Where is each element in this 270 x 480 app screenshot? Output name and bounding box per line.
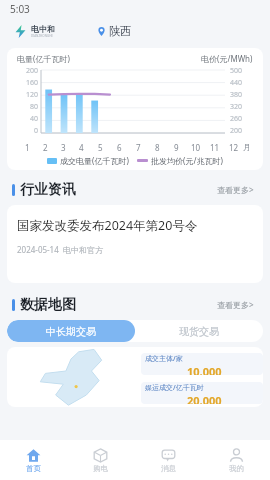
staticText: 440	[230, 78, 243, 88]
staticText: 10	[191, 142, 201, 153]
staticText: 260	[230, 114, 243, 124]
staticText: 2	[43, 142, 48, 153]
staticText: 电中和	[31, 24, 55, 34]
staticText: 20,000	[187, 393, 222, 404]
staticText: 数据地图	[20, 296, 76, 314]
staticText: 1	[25, 142, 30, 153]
staticText: 电价(元/MWh)	[201, 53, 253, 64]
staticText: 消息	[161, 464, 176, 473]
staticText: 7	[136, 142, 141, 153]
staticText: 12	[229, 142, 239, 153]
staticText: 160	[26, 78, 39, 88]
button[interactable]: 查看更多>	[213, 295, 258, 314]
staticText: 380	[230, 90, 243, 100]
button[interactable]: 现货交易	[135, 320, 263, 342]
staticText: 40	[30, 114, 39, 124]
staticText: DIANZHONGHE	[31, 34, 54, 38]
staticText: 国家发改委发布2024年第20号令	[17, 217, 198, 234]
staticText: 9	[174, 142, 179, 153]
staticText: 现货交易	[179, 325, 219, 338]
staticText: 3	[61, 142, 66, 153]
staticText: 行业资讯	[20, 181, 76, 199]
staticText: 中长期交易	[46, 325, 96, 338]
staticText: 查看更多>	[217, 184, 254, 195]
staticText: 电量(亿千瓦时)	[17, 53, 70, 64]
button[interactable]: 首页	[0, 440, 67, 480]
button[interactable]: 中长期交易	[7, 320, 135, 342]
button[interactable]: 消息	[134, 440, 202, 480]
staticText: 6	[117, 142, 122, 153]
button[interactable]: 购电	[67, 440, 134, 480]
staticText: 成交电量(亿千瓦时)	[60, 155, 129, 166]
staticText: 80	[30, 102, 39, 112]
button[interactable]: 国家发改委发布2024年第20号令	[7, 205, 263, 283]
staticText: 购电	[93, 464, 108, 473]
staticText: 320	[230, 102, 243, 112]
staticText: 8	[155, 142, 160, 153]
staticText: 200	[230, 126, 243, 136]
staticText: 11	[210, 142, 220, 153]
staticText: 陕西	[109, 24, 131, 38]
staticText: 批发均价(元/兆瓦时)	[151, 155, 223, 166]
staticText: 0	[34, 126, 39, 136]
staticText: 200	[26, 66, 39, 76]
staticText: 媒运成交/亿千瓦时	[145, 383, 204, 393]
staticText: 5:03	[10, 2, 30, 16]
staticText: 500	[230, 66, 243, 76]
staticText: 首页	[26, 464, 41, 473]
staticText: 10,000	[187, 364, 222, 375]
staticText: 5	[98, 142, 103, 153]
button[interactable]: 我的	[202, 440, 270, 480]
staticText: 2024-05-14 电中和官方	[17, 244, 103, 255]
staticText: 120	[26, 90, 39, 100]
staticText: 我的	[229, 464, 244, 473]
staticText: 成交主体/家	[145, 354, 183, 364]
staticText: 4	[79, 142, 84, 153]
button[interactable]: 查看更多>	[213, 180, 258, 199]
staticText: 月	[243, 142, 251, 152]
staticText: 查看更多>	[217, 299, 254, 310]
